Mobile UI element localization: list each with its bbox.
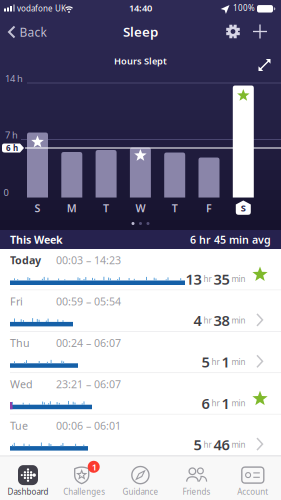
staticText: Guidance [122,486,158,497]
button[interactable]: Settings [225,23,241,39]
button[interactable]: Wed [0,373,281,415]
staticText: 00:24 – 06:07 [56,336,121,350]
staticText: 00:03 – 14:23 [56,253,121,267]
staticText: 1 [92,461,97,473]
staticText: min [231,398,245,408]
staticText: Thu [10,336,30,350]
staticText: 4 [193,311,201,330]
staticText: hr [203,315,211,326]
staticText: This Week [10,232,63,247]
button[interactable]: Tue [0,415,281,456]
staticText: min [231,356,245,367]
staticText: vodafone UK [17,3,66,14]
staticText: 1 [221,393,229,413]
staticText: Sleep [123,23,158,40]
staticText: hr [211,398,219,408]
staticText: 35 [213,269,229,289]
staticText: 00:06 – 06:01 [56,418,121,433]
button[interactable]: Friends [169,456,225,500]
staticText: 23:21 – 06:07 [56,377,121,391]
staticText: 14 h [5,72,23,85]
button[interactable]: 1 [56,456,112,500]
staticText: hr [203,274,211,284]
button[interactable]: Account [225,456,281,500]
button[interactable]: Add [253,24,267,38]
staticText: 1 [221,352,229,372]
staticText: F [206,201,212,215]
staticText: Dashboard [7,486,48,497]
staticText: 5 [201,352,209,372]
staticText: T [103,201,109,215]
staticText: min [231,439,245,450]
staticText: S [34,201,40,215]
staticText: min [231,274,245,284]
button[interactable]: Expand chart [258,58,271,71]
staticText: 13 [185,269,201,289]
staticText: T [172,201,178,215]
staticText: 46 [213,435,229,454]
staticText: Fri [10,294,23,308]
staticText: 00:59 – 05:54 [56,294,121,308]
staticText: 100% [233,3,255,13]
staticText: Challenges [63,486,105,497]
staticText: M [67,201,77,215]
staticText: 7 h [5,129,18,141]
staticText: hr [211,356,219,367]
button[interactable]: Guidance [112,456,169,500]
staticText: Back [19,24,46,40]
staticText: 0 [3,186,8,199]
button[interactable]: Today [0,249,281,290]
staticText: 14:40 [129,2,152,14]
staticText: min [231,315,245,326]
button[interactable]: Dashboard [0,456,56,500]
button[interactable]: Thu [0,332,281,373]
staticText: Hours Slept [114,55,167,67]
staticText: Account [237,486,268,497]
staticText: 6 h [6,143,18,153]
staticText: 6 hr 45 min avg [190,232,271,247]
staticText: 38 [213,311,229,330]
staticText: hr [203,439,211,450]
staticText: 5 [193,435,201,454]
staticText: Wed [10,377,33,391]
staticText: Tue [10,418,28,433]
staticText: Friends [183,486,211,497]
staticText: W [135,201,145,215]
staticText: Today [10,253,41,267]
button[interactable]: Back [7,24,46,40]
button[interactable]: Fri [0,290,281,332]
staticText: S [241,202,246,214]
staticText: 6 [201,393,209,413]
